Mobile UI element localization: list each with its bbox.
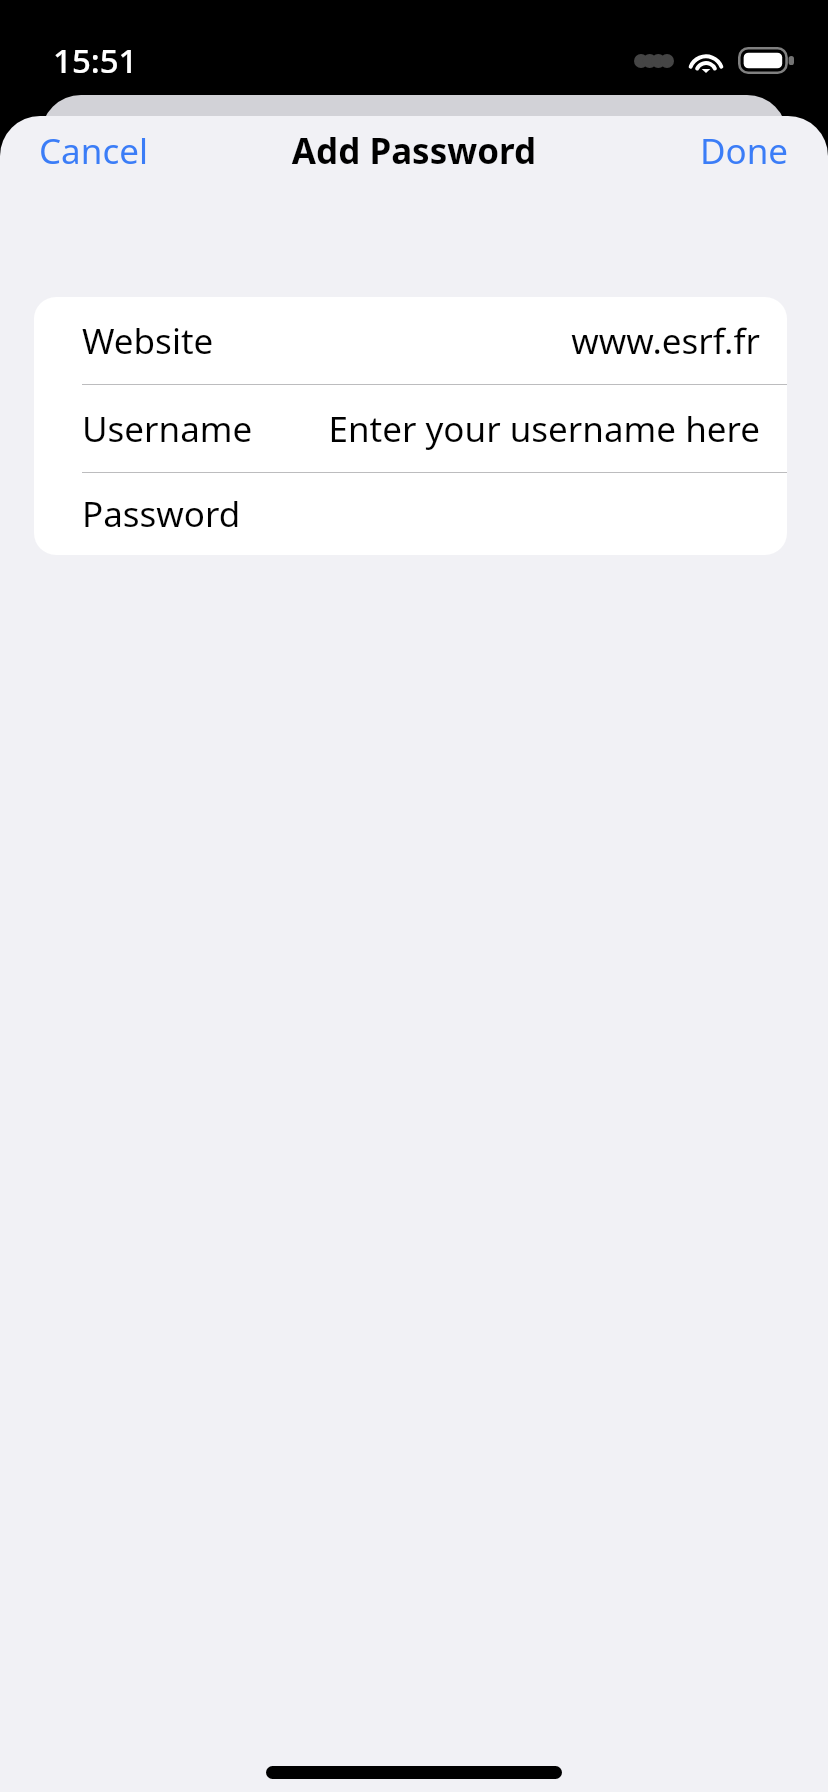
button[interactable]: Username [34, 385, 787, 472]
staticText: Enter your username here [328, 405, 760, 453]
staticText: Done [700, 127, 789, 175]
button[interactable]: Cancel [0, 119, 168, 183]
staticText: www.esrf.fr [571, 317, 760, 365]
staticText: 15:51 [53, 38, 138, 83]
button[interactable]: Website [34, 297, 787, 384]
staticText: Add Password [0, 127, 828, 175]
button[interactable]: Done [680, 119, 828, 183]
staticText: Username [82, 405, 253, 453]
staticText: Cancel [39, 127, 148, 175]
staticText: Password [82, 490, 241, 538]
staticText: Website [82, 317, 214, 365]
button[interactable]: Password [34, 473, 787, 555]
